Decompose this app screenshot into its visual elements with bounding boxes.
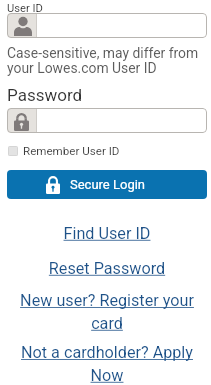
staticText: New user? Register your card [7, 291, 207, 333]
staticText: Not a cardholder? Apply Now [7, 343, 207, 385]
button[interactable]: User ID [7, 13, 207, 38]
button[interactable]: Password [7, 108, 207, 133]
button[interactable]: Not a cardholder? Apply Now [7, 343, 207, 385]
staticText: User ID [7, 2, 43, 15]
button[interactable]: Secure Login [7, 170, 207, 199]
button[interactable]: Remember User ID [7, 142, 121, 160]
staticText: Case-sensitive, may differ from your Low… [7, 45, 206, 76]
staticText: Find User ID [7, 224, 207, 243]
staticText: Remember User ID [23, 144, 120, 158]
button[interactable]: Find User ID [7, 224, 207, 243]
staticText: Reset Password [7, 259, 207, 278]
button[interactable]: Reset Password [7, 259, 207, 278]
staticText: Password [7, 85, 83, 105]
button[interactable]: New user? Register your card [7, 291, 207, 333]
staticText: Secure Login [70, 177, 146, 192]
